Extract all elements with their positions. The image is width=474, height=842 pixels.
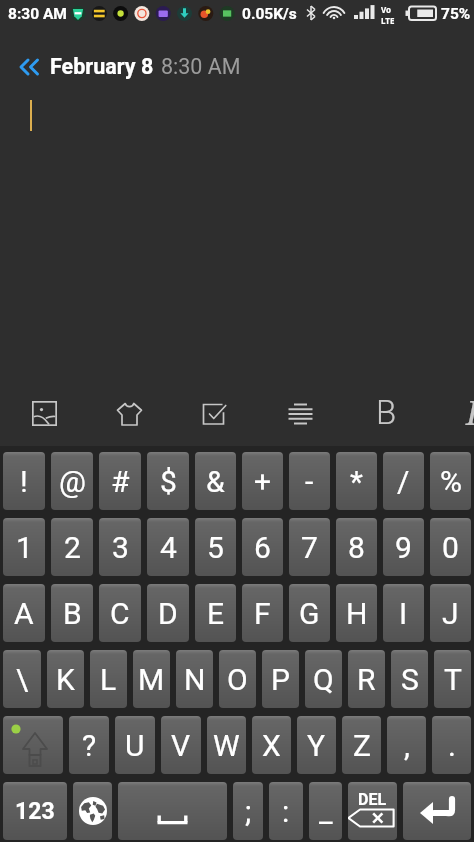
- button[interactable]: W: [207, 716, 246, 774]
- staticText: 75%: [441, 5, 471, 23]
- button[interactable]: S: [391, 650, 428, 708]
- staticText: 2: [64, 530, 81, 565]
- button[interactable]: !: [3, 452, 45, 510]
- button[interactable]: P: [262, 650, 299, 708]
- button[interactable]: *: [336, 452, 377, 510]
- button[interactable]: 5: [195, 518, 236, 576]
- button[interactable]: 2: [51, 518, 93, 576]
- button[interactable]: &: [195, 452, 236, 510]
- button[interactable]: +: [242, 452, 283, 510]
- button[interactable]: X: [252, 716, 291, 774]
- button[interactable]: D: [147, 584, 189, 642]
- button[interactable]: \: [3, 650, 41, 708]
- staticText: Y: [307, 728, 326, 763]
- staticText: C: [110, 596, 130, 631]
- staticText: #: [111, 464, 130, 499]
- staticText: 9: [395, 530, 412, 565]
- staticText: 5: [207, 530, 224, 565]
- button[interactable]: 1: [3, 518, 45, 576]
- staticText: Vo: [381, 4, 392, 15]
- staticText: LTE: [381, 15, 395, 26]
- staticText: V: [171, 728, 191, 763]
- button[interactable]: _: [309, 782, 342, 840]
- button[interactable]: R: [348, 650, 385, 708]
- button[interactable]: ?: [69, 716, 109, 774]
- button[interactable]: ,: [387, 716, 426, 774]
- button[interactable]: 7: [289, 518, 330, 576]
- staticText: E: [207, 596, 225, 631]
- button[interactable]: U: [115, 716, 155, 774]
- button[interactable]: Insert image: [23, 386, 65, 440]
- staticText: ?: [82, 728, 97, 763]
- staticText: %: [440, 464, 462, 499]
- staticText: /: [397, 464, 410, 499]
- button[interactable]: $: [147, 452, 189, 510]
- button[interactable]: I: [383, 584, 424, 642]
- button[interactable]: 0: [430, 518, 471, 576]
- button[interactable]: G: [289, 584, 330, 642]
- button[interactable]: J: [430, 584, 471, 642]
- staticText: !: [20, 464, 28, 499]
- button[interactable]: 9: [383, 518, 424, 576]
- button[interactable]: O: [219, 650, 256, 708]
- button[interactable]: Change language: [73, 782, 112, 840]
- button[interactable]: F: [242, 584, 283, 642]
- button[interactable]: N: [176, 650, 213, 708]
- button[interactable]: Back: [4, 48, 54, 84]
- button[interactable]: -: [289, 452, 330, 510]
- button[interactable]: I: [451, 385, 474, 439]
- button[interactable]: 123: [3, 782, 67, 840]
- button[interactable]: 3: [99, 518, 141, 576]
- button[interactable]: Space: [118, 782, 227, 840]
- staticText: 7: [301, 530, 318, 565]
- button[interactable]: 6: [242, 518, 283, 576]
- staticText: 8: [348, 530, 365, 565]
- button[interactable]: V: [161, 716, 201, 774]
- button[interactable]: Delete: [348, 782, 397, 840]
- staticText: ,: [404, 728, 410, 763]
- button[interactable]: Z: [342, 716, 381, 774]
- staticText: G: [299, 596, 320, 631]
- button[interactable]: Shift: [3, 716, 63, 774]
- button[interactable]: B: [365, 385, 407, 439]
- staticText: 8:30 AM: [161, 54, 241, 79]
- button[interactable]: Insert sticker: [108, 386, 150, 440]
- staticText: J: [442, 596, 459, 631]
- button[interactable]: 4: [147, 518, 189, 576]
- button[interactable]: M: [133, 650, 170, 708]
- button[interactable]: ;: [233, 782, 263, 840]
- staticText: Q: [313, 662, 334, 697]
- staticText: _: [319, 794, 333, 829]
- button[interactable]: T: [434, 650, 471, 708]
- button[interactable]: Q: [305, 650, 342, 708]
- staticText: I: [399, 596, 408, 631]
- staticText: *: [350, 464, 363, 499]
- staticText: H: [346, 596, 368, 631]
- staticText: \: [16, 662, 29, 697]
- staticText: :: [282, 794, 290, 829]
- button[interactable]: :: [269, 782, 303, 840]
- button[interactable]: B: [51, 584, 93, 642]
- button[interactable]: %: [430, 452, 471, 510]
- button[interactable]: Enter: [403, 782, 471, 840]
- button[interactable]: /: [383, 452, 424, 510]
- button[interactable]: Checklist: [193, 386, 235, 440]
- button[interactable]: #: [99, 452, 141, 510]
- button[interactable]: L: [90, 650, 127, 708]
- button[interactable]: Align center: [279, 386, 321, 440]
- staticText: X: [262, 728, 281, 763]
- staticText: February 8: [50, 54, 154, 79]
- button[interactable]: .: [432, 716, 471, 774]
- button[interactable]: @: [51, 452, 93, 510]
- button[interactable]: K: [47, 650, 84, 708]
- staticText: 0: [442, 530, 459, 565]
- staticText: 4: [160, 530, 177, 565]
- button[interactable]: 8: [336, 518, 377, 576]
- button[interactable]: C: [99, 584, 141, 642]
- staticText: 3: [112, 530, 129, 565]
- button[interactable]: Y: [297, 716, 336, 774]
- button[interactable]: H: [336, 584, 377, 642]
- staticText: @: [59, 464, 86, 499]
- button[interactable]: A: [3, 584, 45, 642]
- button[interactable]: E: [195, 584, 236, 642]
